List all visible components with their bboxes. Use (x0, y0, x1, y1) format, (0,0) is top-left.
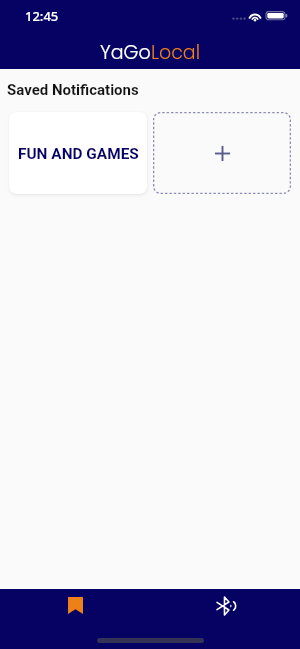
staticText: Saved Notifications (7, 81, 139, 99)
button[interactable]: Bluetooth (150, 589, 300, 622)
staticText: FUN AND GAMES (18, 145, 139, 163)
staticText: 12:45 (25, 7, 59, 25)
staticText: Local (151, 39, 201, 66)
button[interactable]: FUN AND GAMES (9, 112, 147, 194)
staticText: YaGo (100, 39, 151, 66)
button[interactable]: Saved (0, 589, 150, 622)
button[interactable]: Add saved notification (153, 112, 291, 194)
